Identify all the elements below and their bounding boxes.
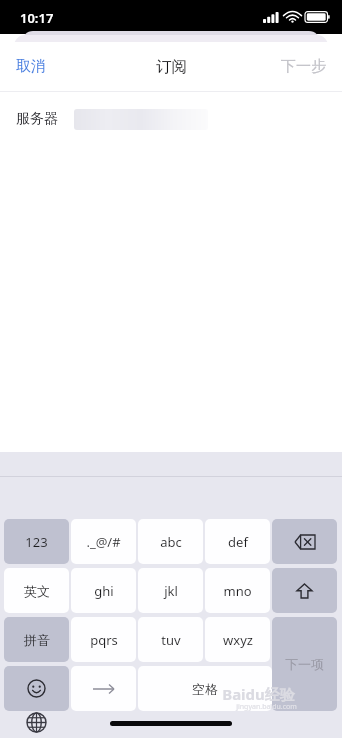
staticText: 服务器 [16, 110, 58, 128]
staticText: mno [223, 582, 252, 600]
staticText: 10:17 [20, 9, 54, 27]
staticText: ghi [94, 582, 114, 600]
button[interactable]: Delete [272, 519, 337, 564]
button[interactable]: 服务器 [0, 92, 342, 146]
button[interactable]: pqrs [71, 617, 136, 662]
staticText: tuv [161, 631, 181, 649]
staticText: 123 [25, 533, 48, 551]
button[interactable]: ._@/# [71, 519, 136, 564]
staticText: 英文 [24, 583, 50, 599]
button[interactable]: Shift [272, 568, 337, 613]
button[interactable]: Next [71, 666, 136, 711]
button[interactable]: def [205, 519, 270, 564]
button[interactable]: Emoji [4, 666, 69, 711]
button[interactable]: wxyz [205, 617, 270, 662]
staticText: jkl [164, 582, 178, 600]
button[interactable]: 123 [4, 519, 69, 564]
button[interactable]: ghi [71, 568, 136, 613]
button[interactable]: 拼音 [4, 617, 69, 662]
button[interactable]: 取消 [6, 51, 56, 82]
staticText: jingyan.baidu.com [236, 702, 297, 712]
staticText: 下一项 [285, 656, 324, 672]
staticText: 取消 [16, 57, 46, 76]
button[interactable]: 空格 [138, 666, 272, 711]
button[interactable]: tuv [138, 617, 203, 662]
staticText: abc [160, 533, 182, 551]
staticText: 订阅 [156, 57, 187, 77]
button[interactable]: 英文 [4, 568, 69, 613]
staticText: ._@/# [86, 533, 121, 551]
button[interactable]: 下一项 [272, 617, 337, 711]
staticText: wxyz [223, 631, 253, 649]
staticText: def [228, 533, 248, 551]
button[interactable]: abc [138, 519, 203, 564]
staticText: 拼音 [24, 632, 50, 648]
staticText: 空格 [192, 681, 218, 697]
staticText: pqrs [90, 631, 118, 649]
button[interactable]: Switch keyboard [20, 706, 52, 738]
button[interactable]: 下一步 [271, 51, 336, 82]
staticText: Baidu经验 [222, 684, 295, 704]
button[interactable]: jkl [138, 568, 203, 613]
button[interactable]: mno [205, 568, 270, 613]
staticText: 下一步 [281, 57, 326, 76]
